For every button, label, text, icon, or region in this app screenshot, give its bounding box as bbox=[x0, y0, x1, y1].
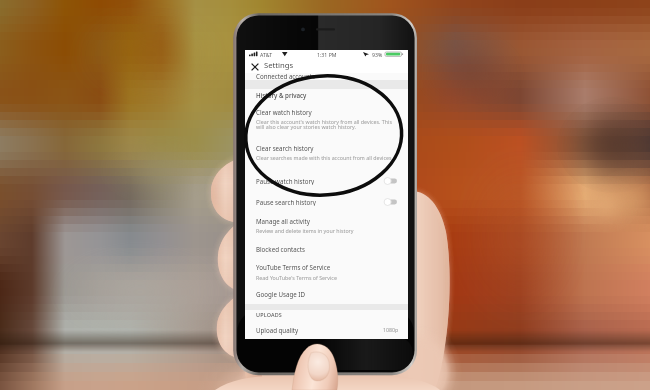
staticText: Pause watch history bbox=[256, 177, 315, 185]
button[interactable]: YouTube Terms of Service bbox=[245, 259, 408, 287]
button[interactable]: UPLOADS bbox=[245, 310, 408, 322]
button[interactable]: Google Usage ID bbox=[245, 286, 408, 304]
staticText: Clear search history bbox=[256, 144, 314, 152]
staticText: Pause search history bbox=[256, 198, 316, 206]
staticText: will also clear your stories watch histo… bbox=[256, 123, 357, 130]
button[interactable]: Pause search history bbox=[245, 185, 408, 206]
staticText: Manage all activity bbox=[256, 217, 310, 225]
staticText: Connected accounts bbox=[256, 72, 315, 79]
button[interactable]: Clear watch history bbox=[245, 103, 408, 131]
button[interactable]: History & privacy bbox=[245, 89, 408, 103]
staticText: History & privacy bbox=[256, 91, 307, 99]
staticText: 93% bbox=[372, 51, 383, 58]
button[interactable]: Upload quality bbox=[245, 321, 408, 338]
staticText: Review and delete items in your history bbox=[256, 227, 354, 234]
button[interactable]: Close settings bbox=[248, 60, 262, 74]
staticText: AT&T bbox=[260, 51, 273, 58]
staticText: Read YouTube's Terms of Service bbox=[256, 274, 337, 281]
staticText: Clear watch history bbox=[256, 108, 312, 116]
button[interactable]: Blocked contacts bbox=[245, 236, 408, 258]
button[interactable]: Connected accounts bbox=[245, 73, 408, 80]
staticText: 1080p bbox=[383, 326, 399, 333]
staticText: Google Usage ID bbox=[256, 290, 305, 298]
staticText: Blocked contacts bbox=[256, 245, 305, 253]
staticText: Clear this account's watch history from … bbox=[256, 118, 392, 125]
staticText: Settings bbox=[264, 60, 294, 70]
button[interactable]: Manage all activity bbox=[245, 206, 408, 236]
staticText: UPLOADS bbox=[256, 311, 282, 318]
staticText: 1:31 PM bbox=[317, 51, 337, 58]
staticText: Clear searches made with this account fr… bbox=[256, 154, 392, 161]
button[interactable]: Clear search history bbox=[245, 131, 408, 164]
button[interactable]: Pause watch history bbox=[245, 164, 408, 185]
staticText: YouTube Terms of Service bbox=[256, 263, 331, 271]
staticText: Upload quality bbox=[256, 326, 299, 334]
